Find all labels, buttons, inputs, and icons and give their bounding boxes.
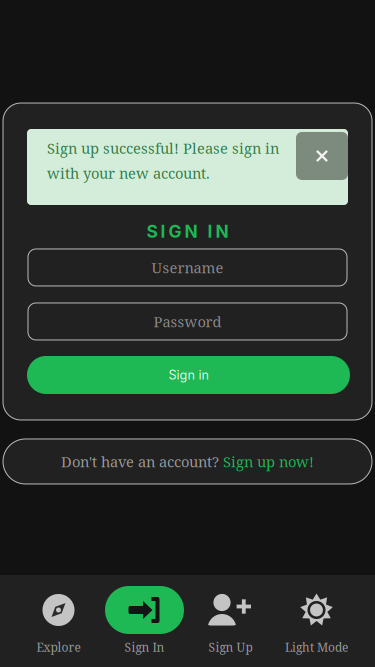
staticText: Explore (36, 639, 80, 655)
staticText: SIGN IN (146, 221, 228, 242)
button[interactable]: Dismiss alert (296, 132, 348, 180)
staticText: Sign up successful! Please sign in with … (47, 138, 279, 183)
staticText: Sign Up (208, 639, 252, 655)
staticText: Don't have an account? (61, 451, 219, 471)
staticText: Password (153, 311, 221, 331)
button[interactable]: Sign In (101, 575, 187, 667)
button[interactable]: Sign Up (187, 575, 273, 667)
button[interactable]: Don't have an account? (3, 439, 372, 484)
button[interactable]: Light Mode (273, 575, 359, 667)
button[interactable]: Explore (15, 575, 101, 667)
staticText: Sign up now! (223, 451, 314, 471)
staticText: Username (151, 257, 223, 277)
staticText: Sign in (168, 367, 208, 383)
button[interactable]: Sign in (27, 356, 350, 394)
staticText: Sign In (124, 639, 164, 655)
staticText: Light Mode (285, 639, 348, 655)
